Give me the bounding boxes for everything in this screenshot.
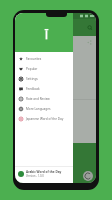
button[interactable]: Share [87,40,92,45]
staticText: Arabic Word of the Day [26,170,62,174]
staticText: Feedback [26,87,40,91]
button[interactable]: Feedback [15,84,73,94]
button[interactable]: Refresh [83,171,93,181]
staticText: Japanese Word of the Day [26,117,64,121]
button[interactable]: Japanese Word of the Day [15,114,73,124]
staticText: Settings [26,77,38,81]
staticText: More Languages [26,107,51,111]
button[interactable]: Rate and Review [15,94,73,104]
button[interactable]: Search [86,24,94,32]
button[interactable]: Favourites [15,54,73,64]
staticText: Version - 1.0.0 [26,174,44,178]
staticText: Popular [26,67,38,71]
button[interactable]: Arabic Word of the Day [15,167,73,181]
button[interactable]: More Languages [15,104,73,114]
staticText: Favourites [26,57,42,61]
button[interactable]: Popular [15,64,73,74]
button[interactable]: Settings [15,74,73,84]
staticText: Rate and Review [26,97,50,101]
